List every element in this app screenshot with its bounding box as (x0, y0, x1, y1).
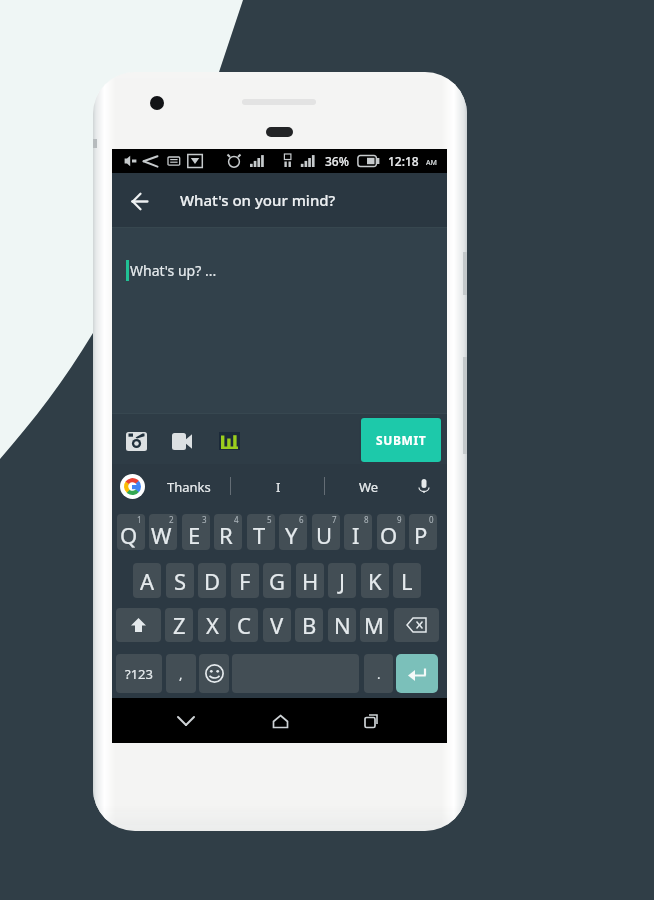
button[interactable]: S (166, 563, 194, 598)
staticText: 2 (169, 514, 174, 525)
staticText: SUBMIT (376, 432, 427, 448)
staticText: T (253, 520, 266, 550)
button[interactable]: We (359, 478, 379, 496)
button[interactable]: Enter (396, 654, 438, 693)
staticText: 36% (325, 153, 349, 169)
staticText: B (302, 610, 317, 640)
button[interactable]: X (198, 608, 226, 642)
button[interactable]: Google (120, 474, 145, 499)
staticText: E (188, 520, 201, 550)
button[interactable]: M (360, 608, 388, 642)
staticText: O (380, 520, 398, 550)
button[interactable]: W (149, 514, 177, 550)
button[interactable]: Back (117, 185, 161, 217)
staticText: N (334, 610, 351, 640)
button[interactable]: Backspace (394, 608, 439, 642)
staticText: 6 (299, 514, 304, 525)
staticText: X (206, 610, 219, 640)
button[interactable]: N (328, 608, 356, 642)
staticText: AM (426, 158, 438, 168)
staticText: L (401, 566, 413, 596)
button[interactable]: Emoji (199, 654, 229, 693)
staticText: 7 (332, 514, 337, 525)
staticText: , (179, 665, 183, 683)
button[interactable]: O (377, 514, 405, 550)
button[interactable]: ?123 (116, 654, 162, 693)
button[interactable]: Shift (116, 608, 161, 642)
button[interactable]: P (409, 514, 437, 550)
button[interactable]: Z (165, 608, 193, 642)
button[interactable]: SUBMIT (361, 418, 441, 462)
button[interactable]: Video (165, 424, 199, 458)
staticText: . (377, 665, 381, 683)
staticText: Y (285, 520, 298, 550)
staticText: 8 (364, 514, 369, 525)
button[interactable]: V (263, 608, 291, 642)
staticText: 1 (137, 514, 142, 525)
staticText: What's up? ... (130, 261, 217, 280)
button[interactable]: K (361, 563, 389, 598)
button[interactable]: I (276, 478, 281, 496)
staticText: Q (120, 520, 138, 550)
button[interactable]: Q (117, 514, 145, 550)
staticText: 12:18 (388, 153, 419, 169)
staticText: C (237, 610, 251, 640)
button[interactable]: F (231, 563, 259, 598)
staticText: H (302, 566, 319, 596)
staticText: D (204, 566, 221, 596)
button[interactable]: . (364, 654, 393, 693)
staticText: M (364, 610, 384, 640)
staticText: U (316, 520, 333, 550)
button[interactable]: E (182, 514, 210, 550)
button[interactable]: B (295, 608, 323, 642)
staticText: G (269, 566, 286, 596)
button[interactable]: Hide keyboard (168, 703, 204, 739)
button[interactable]: C (230, 608, 258, 642)
staticText: F (239, 566, 251, 596)
staticText: 3 (202, 514, 207, 525)
button[interactable]: Thanks (167, 478, 211, 496)
button[interactable]: Poll (212, 424, 246, 458)
button[interactable]: L (393, 563, 421, 598)
staticText: 9 (397, 514, 402, 525)
button[interactable]: Photo (119, 424, 153, 458)
staticText: ?123 (125, 665, 153, 683)
button[interactable]: J (328, 563, 356, 598)
button[interactable]: D (198, 563, 226, 598)
staticText: R (219, 520, 233, 550)
staticText: 4 (234, 514, 239, 525)
button[interactable]: Home (262, 703, 298, 739)
button[interactable]: Recent apps (354, 703, 390, 739)
staticText: I (352, 520, 360, 550)
button[interactable]: I (344, 514, 372, 550)
staticText: J (339, 566, 346, 596)
button[interactable]: R (214, 514, 242, 550)
staticText: W (151, 520, 172, 550)
button[interactable]: Voice input (412, 474, 436, 498)
button[interactable]: G (263, 563, 291, 598)
staticText: K (368, 566, 382, 596)
staticText: V (270, 610, 284, 640)
button[interactable]: U (312, 514, 340, 550)
staticText: A (140, 566, 155, 596)
staticText: P (414, 520, 428, 550)
staticText: 0 (429, 514, 434, 525)
button[interactable]: T (247, 514, 275, 550)
staticText: S (174, 566, 187, 596)
button[interactable]: , (166, 654, 196, 693)
button[interactable]: A (133, 563, 161, 598)
button[interactable]: Y (279, 514, 307, 550)
staticText: Z (173, 610, 186, 640)
staticText: What's on your mind? (180, 190, 336, 210)
button[interactable]: H (296, 563, 324, 598)
staticText: 5 (267, 514, 272, 525)
